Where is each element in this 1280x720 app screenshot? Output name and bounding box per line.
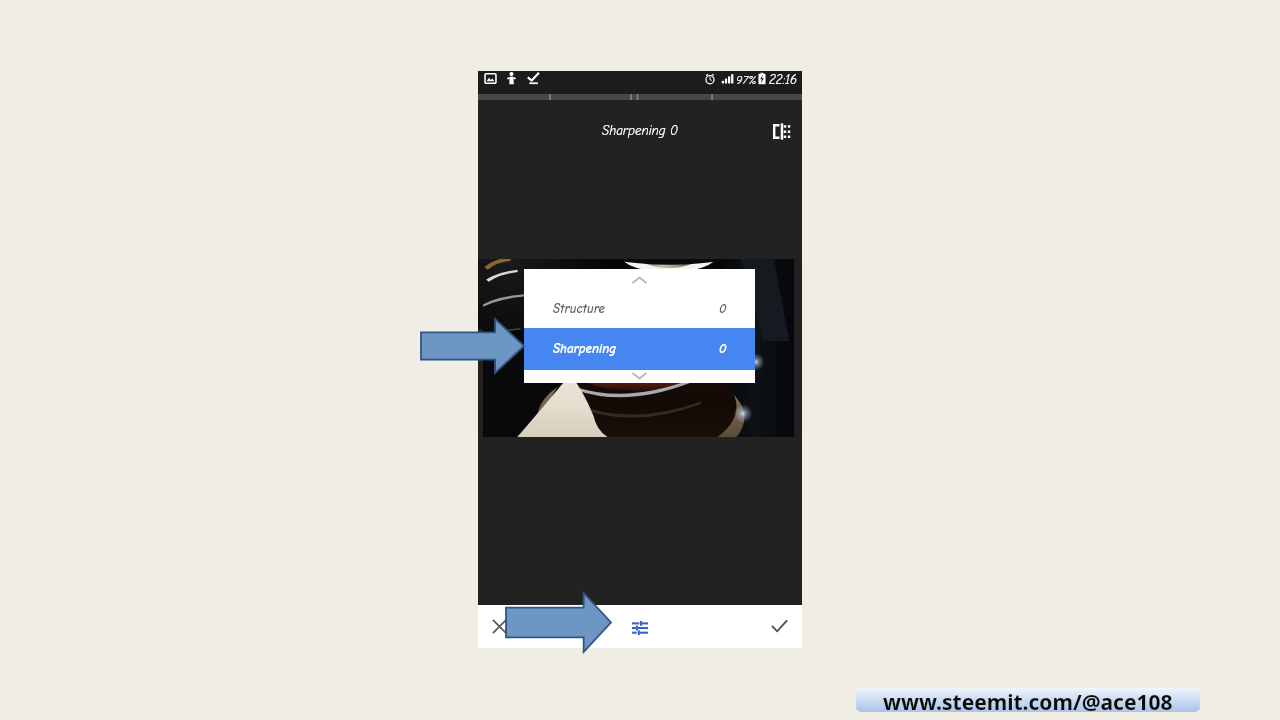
- button[interactable]: Adjust sliders: [620, 605, 660, 648]
- staticText: www.steemit.com/@ace108: [883, 688, 1173, 712]
- staticText: 97%: [736, 73, 757, 87]
- button[interactable]: Structure: [524, 291, 755, 328]
- staticText: 22:16: [769, 72, 798, 87]
- button[interactable]: Previous adjustment: [524, 269, 755, 291]
- button[interactable]: Pointer arrow: [420, 318, 525, 374]
- button[interactable]: Apply: [759, 605, 799, 648]
- staticText: 0: [719, 341, 727, 356]
- staticText: Sharpening 0: [602, 123, 678, 138]
- button[interactable]: Next adjustment: [524, 370, 755, 383]
- staticText: 0: [719, 301, 727, 316]
- staticText: Sharpening: [553, 341, 616, 356]
- staticText: Structure: [553, 301, 605, 316]
- button[interactable]: Sharpening: [524, 328, 755, 370]
- button[interactable]: Compare before and after: [768, 118, 794, 144]
- button[interactable]: Pointer arrow: [505, 592, 612, 653]
- button[interactable]: Cancel: [479, 605, 519, 648]
- button[interactable]: www.steemit.com/@ace108: [856, 688, 1200, 712]
